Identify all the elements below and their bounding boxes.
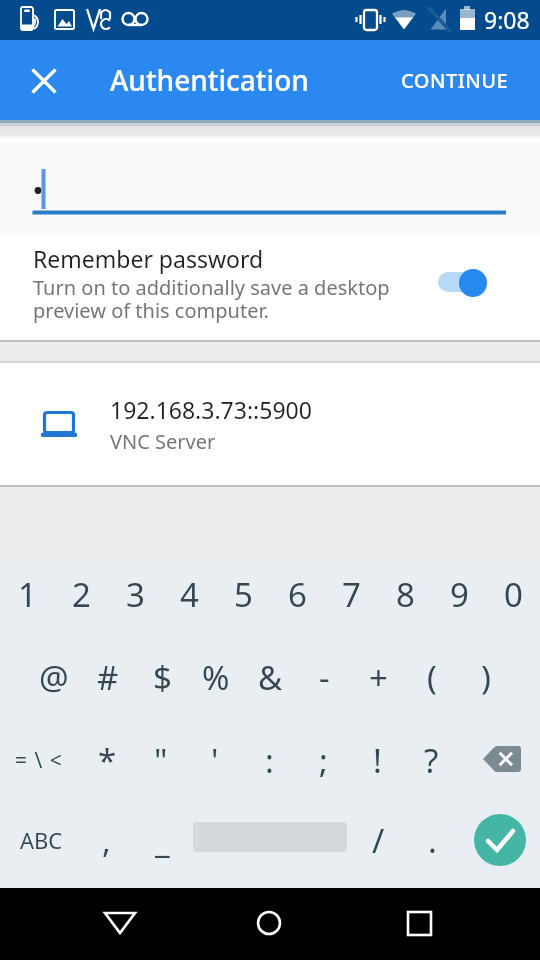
button[interactable]: / [351,803,405,877]
staticText: ? [424,738,439,783]
staticText: 9 [450,572,469,617]
button[interactable]: ' [188,723,242,797]
button[interactable]: , [79,803,133,877]
button[interactable]: - [297,640,351,714]
staticText: ( [427,655,437,700]
staticText: : [265,738,274,783]
staticText: Turn on to additionally save a desktop p… [33,274,390,324]
button[interactable]: Enter [474,814,526,866]
staticText: * [98,738,117,783]
staticText: 6 [288,572,307,617]
button[interactable]: + [351,640,405,714]
button[interactable]: @ [27,640,81,714]
staticText: 3 [126,572,145,617]
button[interactable]: ABC [1,803,81,877]
staticText: ) [481,655,491,700]
staticText: 9:08 [484,4,530,35]
button[interactable]: 4 [162,557,216,631]
button[interactable]: ; [296,723,350,797]
staticText: - [319,655,330,700]
staticText: _ [155,818,170,863]
staticText: ; [319,738,328,783]
button[interactable]: 5 [216,557,270,631]
button[interactable]: 7 [324,557,378,631]
staticText: & [258,655,283,700]
staticText: . [428,818,437,863]
button[interactable]: & [243,640,297,714]
button[interactable]: 6 [270,557,324,631]
button[interactable]: " [134,723,188,797]
staticText: , [102,818,111,863]
button[interactable]: 3 [108,557,162,631]
button[interactable]: 9 [432,557,486,631]
staticText: $ [153,655,172,700]
button[interactable]: 8 [378,557,432,631]
button[interactable]: Close [15,52,73,110]
button[interactable]: : [242,723,296,797]
staticText: @ [39,655,69,700]
button[interactable]: _ [135,803,189,877]
staticText: ABC [20,825,63,855]
button[interactable]: Remember password toggle [428,260,496,306]
button[interactable]: 0 [486,557,540,631]
button[interactable]: . [405,803,459,877]
staticText: + [369,655,388,700]
staticText: / [372,818,385,863]
staticText: ' [211,738,219,783]
staticText: CONTINUE [401,67,509,94]
staticText: 7 [342,572,361,617]
staticText: % [202,655,230,700]
button[interactable]: Recent apps [383,888,455,960]
button[interactable]: 192.168.3.73::5900 [0,363,540,485]
button[interactable]: ( [405,640,459,714]
button[interactable]: ! [350,723,404,797]
staticText: Authentication [110,61,309,99]
button[interactable]: ? [404,723,458,797]
button[interactable]: 2 [54,557,108,631]
button[interactable]: % [189,640,243,714]
button[interactable]: * [80,723,134,797]
button[interactable]: Back [84,888,156,960]
staticText: 4 [180,572,199,617]
staticText: 192.168.3.73::5900 [110,394,312,425]
staticText: VNC Server [110,428,216,455]
staticText: # [97,655,119,700]
staticText: Remember password [33,243,264,274]
button[interactable]: $ [135,640,189,714]
button[interactable]: Backspace [465,722,539,796]
button[interactable]: CONTINUE [383,51,527,110]
button[interactable]: ) [459,640,513,714]
staticText: ! [373,738,382,783]
staticText: 1 [18,572,37,617]
staticText: " [154,738,168,783]
button[interactable]: = \ < [4,723,74,797]
button[interactable]: 1 [0,557,54,631]
staticText: 5 [234,572,253,617]
button[interactable]: # [81,640,135,714]
button[interactable]: Home [233,888,305,960]
staticText: 2 [72,572,91,617]
staticText: 0 [504,572,523,617]
staticText: = \ < [15,746,63,775]
staticText: 8 [396,572,415,617]
